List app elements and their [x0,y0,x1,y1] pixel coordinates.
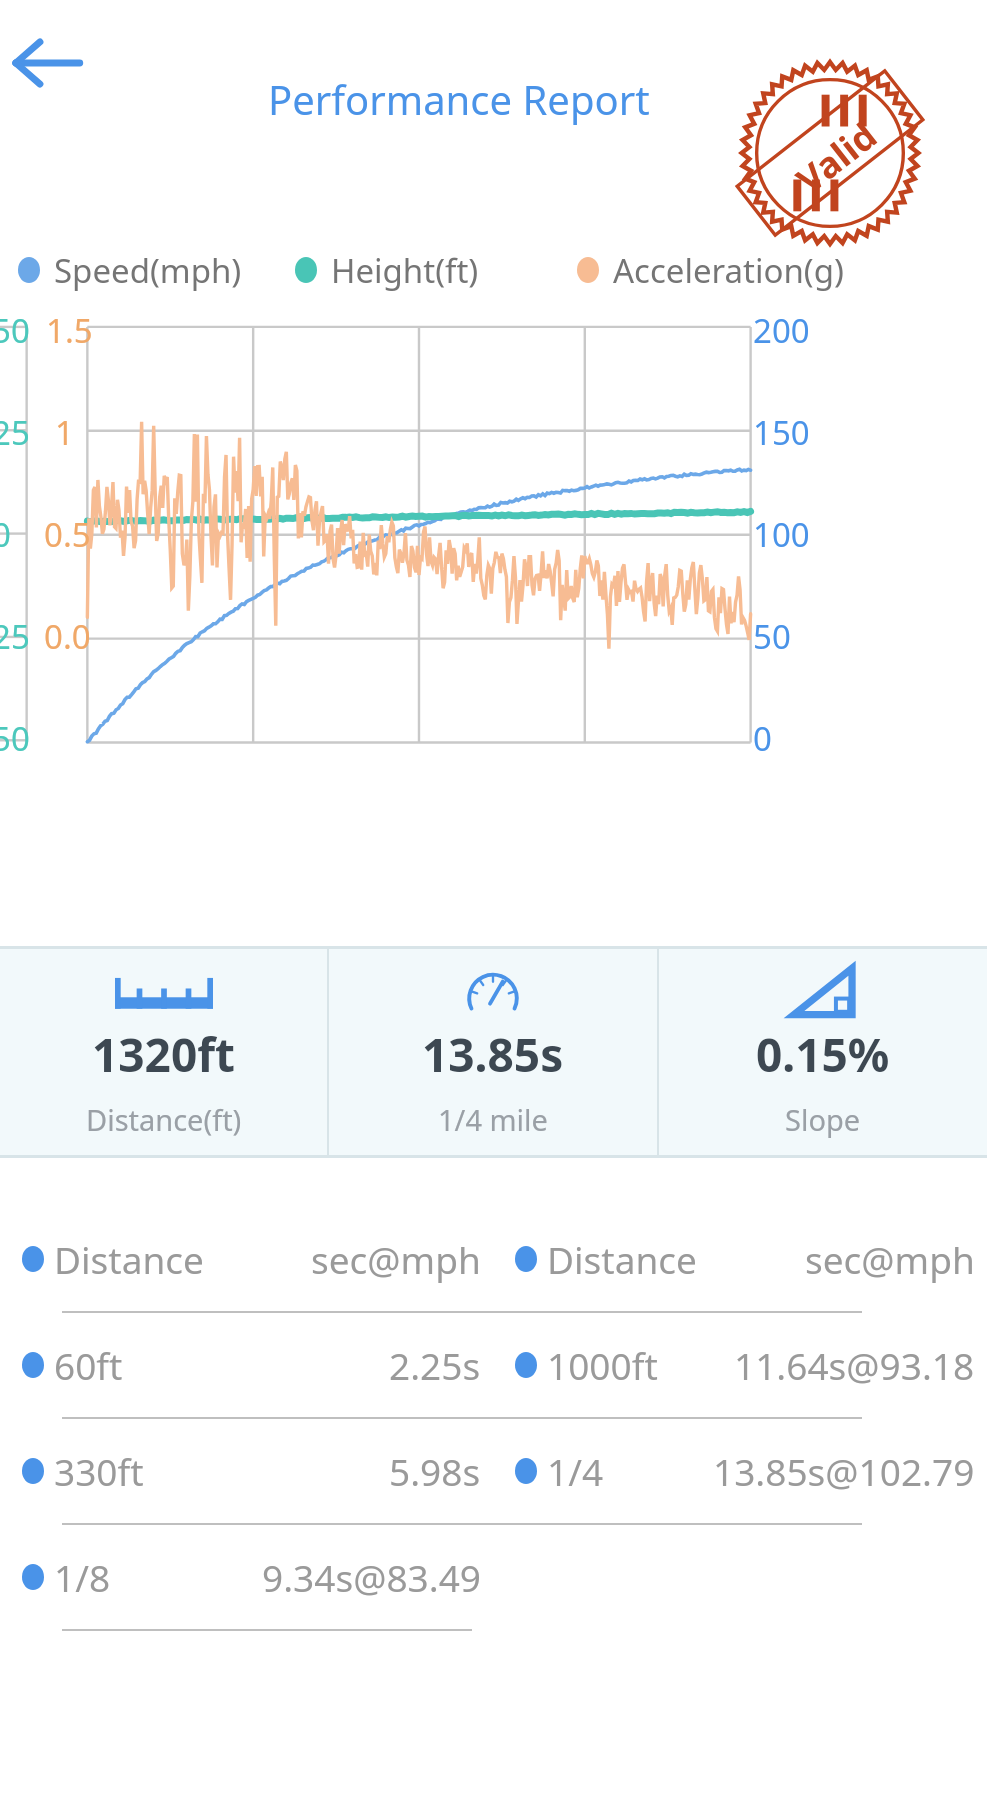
staticText: Distance(ft) [86,1100,242,1139]
staticText: 0.15% [756,1023,890,1086]
staticText: 100 [753,512,810,557]
staticText: Acceleration(g) [613,248,844,293]
staticText: 200 [753,308,810,353]
staticText: 60ft [54,1340,123,1390]
staticText: 13.85s@102.79 [713,1446,975,1496]
staticText: 25 [0,614,30,659]
staticText: 0 [753,716,772,761]
staticText: 11.64s@93.18 [734,1340,975,1390]
staticText: Performance Report [268,72,650,126]
staticText: 5.98s [389,1446,481,1496]
staticText: 9.34s@83.49 [262,1552,481,1602]
staticText: Valid [786,111,887,204]
other: Distance [115,970,213,1014]
staticText: sec@mph [805,1234,975,1284]
staticText: 50 [0,308,30,353]
other: Slope [790,965,856,1019]
staticText: 330ft [54,1446,144,1496]
button[interactable]: Distance [0,1216,493,1302]
staticText: 50 [0,716,30,761]
staticText: 0.5 [44,512,91,557]
staticText: 0.0 [44,614,91,659]
staticText: 0 [0,512,11,557]
staticText: 13.85s [422,1023,564,1086]
staticText: sec@mph [311,1234,481,1284]
staticText: 1000ft [547,1340,658,1390]
button[interactable]: Elapsed time [329,949,657,1155]
staticText: 50 [753,614,791,659]
button[interactable]: 60ft [0,1322,493,1408]
other: Elapsed time [462,965,524,1019]
button[interactable]: Distance [0,949,327,1155]
button[interactable]: Slope [659,949,987,1155]
button[interactable]: 1000ft [493,1322,987,1408]
staticText: Slope [785,1100,861,1139]
staticText: Height(ft) [331,248,479,293]
button[interactable]: 330ft [0,1428,493,1514]
staticText: Distance [54,1234,204,1284]
staticText: 1/4 mile [438,1100,548,1139]
staticText: 1.5 [46,308,93,353]
staticText: Speed(mph) [54,248,242,293]
button[interactable]: Distance [493,1216,987,1302]
staticText: 1320ft [92,1023,236,1086]
staticText: Distance [547,1234,697,1284]
staticText: 2.25s [389,1340,481,1390]
staticText: 150 [753,410,810,455]
button[interactable]: 1/8 [0,1534,493,1620]
button[interactable]: 1/4 [493,1428,987,1514]
staticText: 1/4 [547,1446,604,1496]
staticText: 25 [0,410,30,455]
button[interactable]: Back [8,24,86,102]
staticText: 1/8 [54,1552,111,1602]
staticText: 1 [55,410,74,455]
